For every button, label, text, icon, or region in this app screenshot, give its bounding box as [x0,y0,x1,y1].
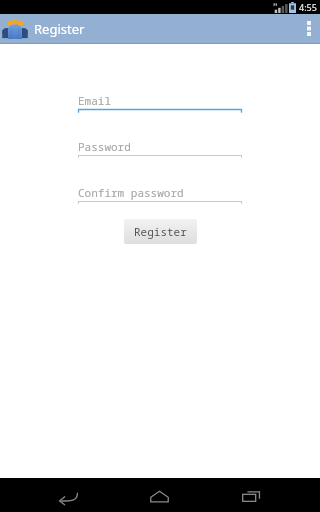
staticText: Email [78,93,111,108]
button[interactable]: Recent apps [228,480,274,512]
button[interactable]: Home [136,480,182,512]
button[interactable]: Back [45,480,91,512]
button[interactable]: More options [298,14,320,43]
button[interactable]: Confirm password [78,183,242,205]
button[interactable]: Register [124,219,197,244]
staticText: 4:55 [299,1,317,13]
staticText: Confirm password [78,185,184,200]
staticText: Password [78,139,131,154]
staticText: Register [134,224,187,239]
button[interactable]: Email [78,91,242,113]
button[interactable]: Password [78,137,242,159]
staticText: Register [34,20,85,38]
